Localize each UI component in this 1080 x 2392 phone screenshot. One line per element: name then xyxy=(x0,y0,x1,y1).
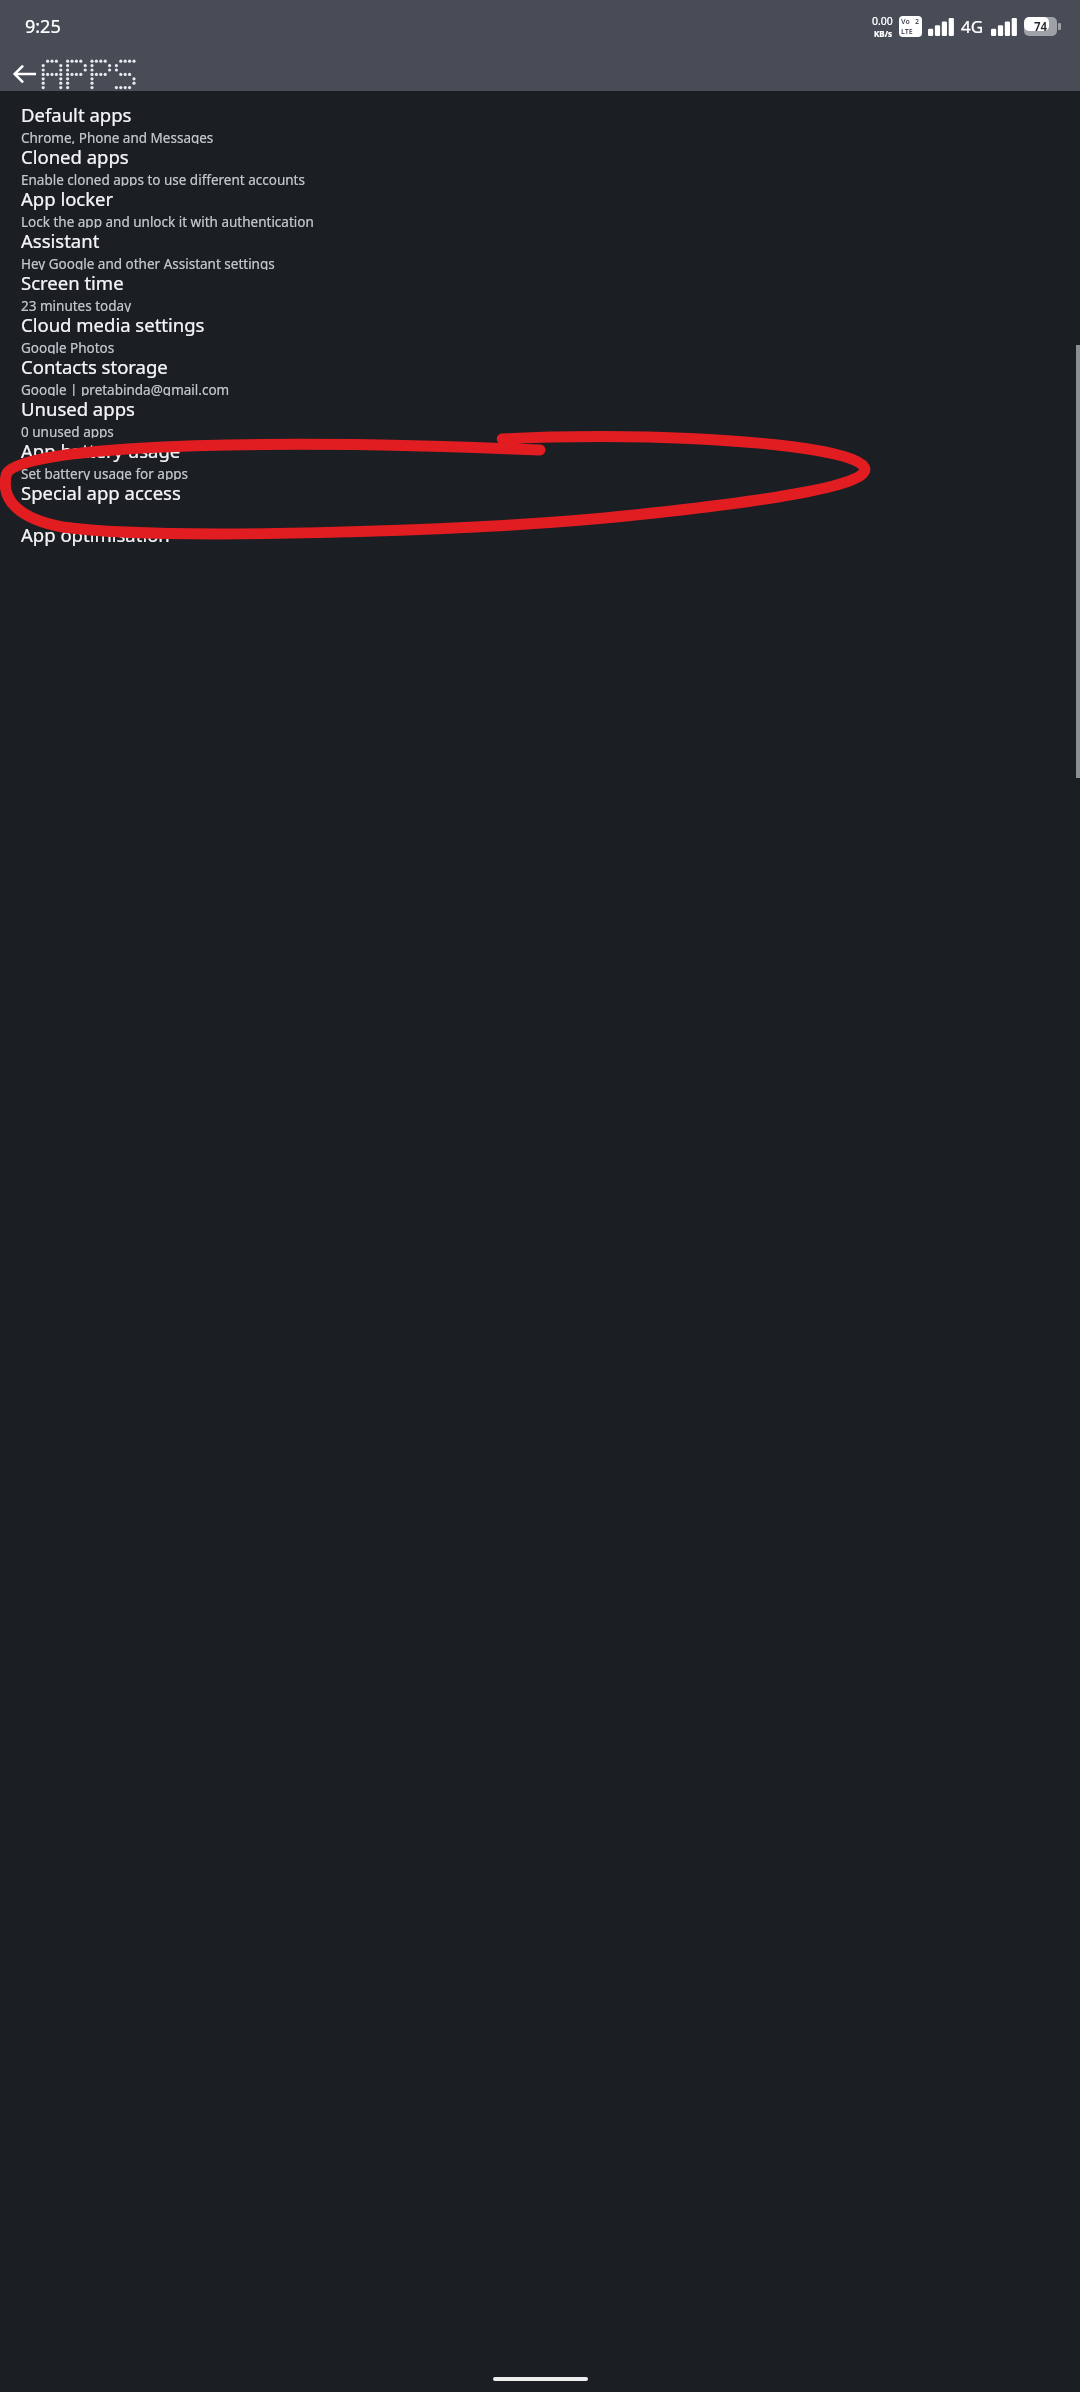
staticText: 74 xyxy=(1034,19,1048,35)
button[interactable]: Assistant xyxy=(0,228,1080,270)
staticText: Chrome, Phone and Messages xyxy=(21,129,214,144)
button[interactable]: App optimisation xyxy=(0,522,1080,564)
staticText: App locker xyxy=(21,186,114,211)
staticText: App battery usage xyxy=(21,438,181,463)
staticText: Enable cloned apps to use different acco… xyxy=(21,171,305,186)
staticText: Unused apps xyxy=(21,396,135,421)
button[interactable]: App battery usage xyxy=(0,438,1080,480)
staticText: 0 unused apps xyxy=(21,423,114,438)
button[interactable]: Special app access xyxy=(0,480,1080,522)
staticText: Screen time xyxy=(21,270,124,295)
staticText: 4G xyxy=(961,15,984,38)
staticText: Google Photos xyxy=(21,339,115,354)
staticText: Assistant xyxy=(21,228,100,253)
button[interactable]: Unused apps xyxy=(0,396,1080,438)
button[interactable]: Back xyxy=(2,57,48,91)
button[interactable]: Contacts storage xyxy=(0,354,1080,396)
staticText: App optimisation xyxy=(21,522,170,547)
staticText: 23 minutes today xyxy=(21,297,132,312)
staticText: Cloned apps xyxy=(21,144,129,169)
button[interactable]: App locker xyxy=(0,186,1080,228)
staticText: Google | pretabinda@gmail.com xyxy=(21,381,230,396)
staticText: Special app access xyxy=(21,480,181,505)
staticText: Default apps xyxy=(21,102,132,127)
button[interactable]: Default apps xyxy=(0,102,1080,144)
staticText: Vo xyxy=(901,17,910,27)
staticText: Lock the app and unlock it with authenti… xyxy=(21,213,314,228)
button[interactable]: Screen time xyxy=(0,270,1080,312)
staticText: Cloud media settings xyxy=(21,312,205,337)
staticText: Contacts storage xyxy=(21,354,168,379)
staticText: KB/s xyxy=(874,28,892,39)
staticText: 0.00 xyxy=(872,14,893,28)
staticText: Set battery usage for apps xyxy=(21,465,188,480)
staticText: LTE xyxy=(901,27,913,37)
staticText: 9:25 xyxy=(25,14,61,39)
staticText: Hey Google and other Assistant settings xyxy=(21,255,275,270)
button[interactable]: Cloud media settings xyxy=(0,312,1080,354)
button[interactable]: Cloned apps xyxy=(0,144,1080,186)
staticText: 2 xyxy=(915,17,920,27)
